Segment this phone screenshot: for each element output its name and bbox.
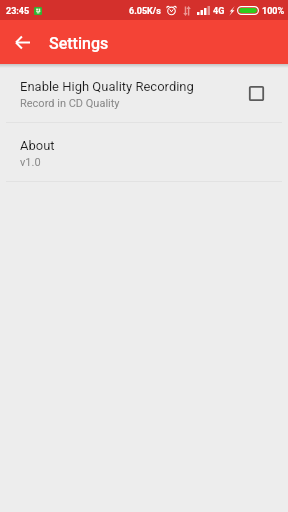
button[interactable]: Enable High Quality Recording — [0, 64, 288, 122]
button[interactable]: About — [0, 123, 288, 181]
button[interactable]: Back — [7, 27, 37, 57]
staticText: Enable High Quality Recording — [20, 79, 194, 94]
staticText: 4G — [213, 6, 225, 17]
staticText: Record in CD Quality — [20, 97, 120, 110]
staticText: Settings — [49, 34, 109, 53]
staticText: 100% — [262, 6, 285, 17]
staticText: v1.0 — [20, 156, 41, 169]
staticText: About — [20, 138, 55, 153]
staticText: 23:45 — [6, 6, 30, 17]
staticText: 6.05K/s — [129, 6, 161, 17]
